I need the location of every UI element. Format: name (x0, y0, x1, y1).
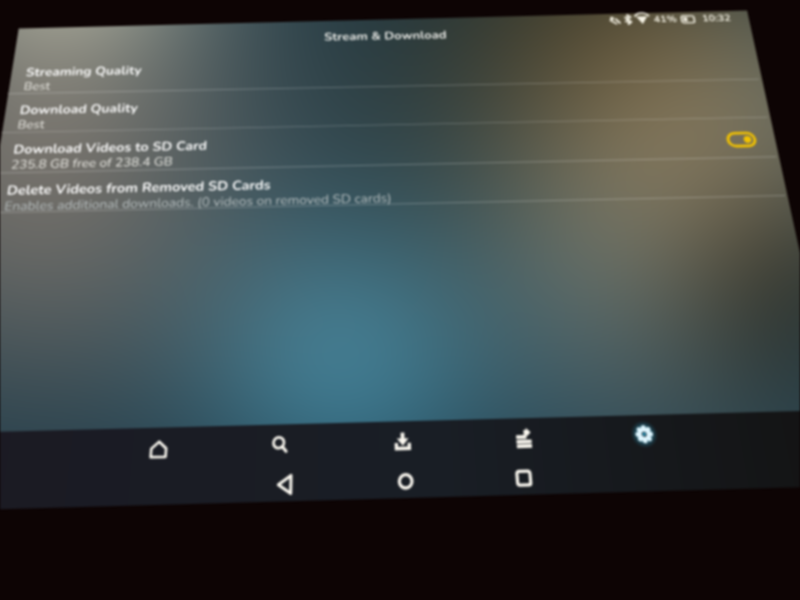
staticText: Stream & Download (324, 27, 447, 44)
staticText: 41% (653, 13, 678, 25)
staticText: Streaming Quality (25, 62, 143, 80)
staticText: Delete Videos from Removed SD Cards (6, 176, 271, 199)
staticText: 235.8 GB free of 238.4 GB (10, 153, 174, 173)
staticText: Best (22, 78, 51, 94)
button[interactable]: Streaming Quality (7, 43, 759, 94)
staticText: Download Quality (19, 99, 139, 118)
button[interactable]: Delete Videos from Removed SD Cards (0, 156, 785, 214)
button[interactable]: Download Videos to SD Card (725, 131, 759, 148)
staticText: Enables additional downloads. (0 videos … (3, 189, 392, 215)
staticText: 10:32 (701, 12, 732, 24)
staticText: Best (16, 116, 46, 133)
button[interactable]: Download Videos to SD Card (0, 117, 776, 173)
staticText: Download Videos to SD Card (12, 137, 208, 158)
button[interactable]: Download Quality (1, 79, 767, 132)
